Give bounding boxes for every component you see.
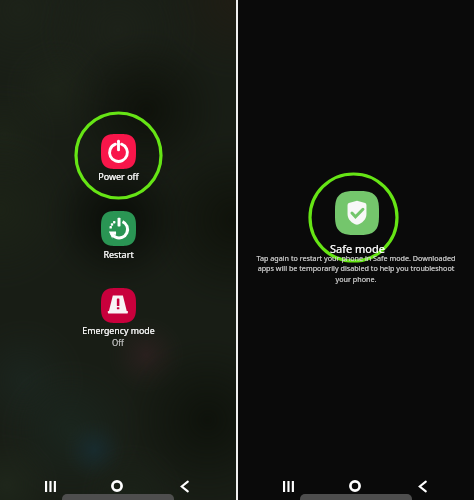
button[interactable]: Back <box>411 475 433 497</box>
staticText: Emergency mode <box>82 325 155 337</box>
button[interactable]: Restart <box>101 211 136 246</box>
button[interactable]: Home <box>344 475 366 497</box>
button[interactable]: Back <box>173 475 195 497</box>
staticText: Off <box>112 337 124 348</box>
button[interactable]: Safe mode <box>308 172 399 263</box>
button[interactable]: Home <box>106 475 128 497</box>
button[interactable]: Emergency mode <box>101 288 136 323</box>
button[interactable]: Recent apps <box>39 475 61 497</box>
staticText: Restart <box>103 248 134 260</box>
staticText: Tap again to restart your phone in Safe … <box>250 253 462 285</box>
staticText: Power off <box>98 170 139 182</box>
button[interactable]: Recent apps <box>277 475 299 497</box>
staticText: Safe mode <box>330 241 385 256</box>
button[interactable]: Power off <box>74 111 163 200</box>
